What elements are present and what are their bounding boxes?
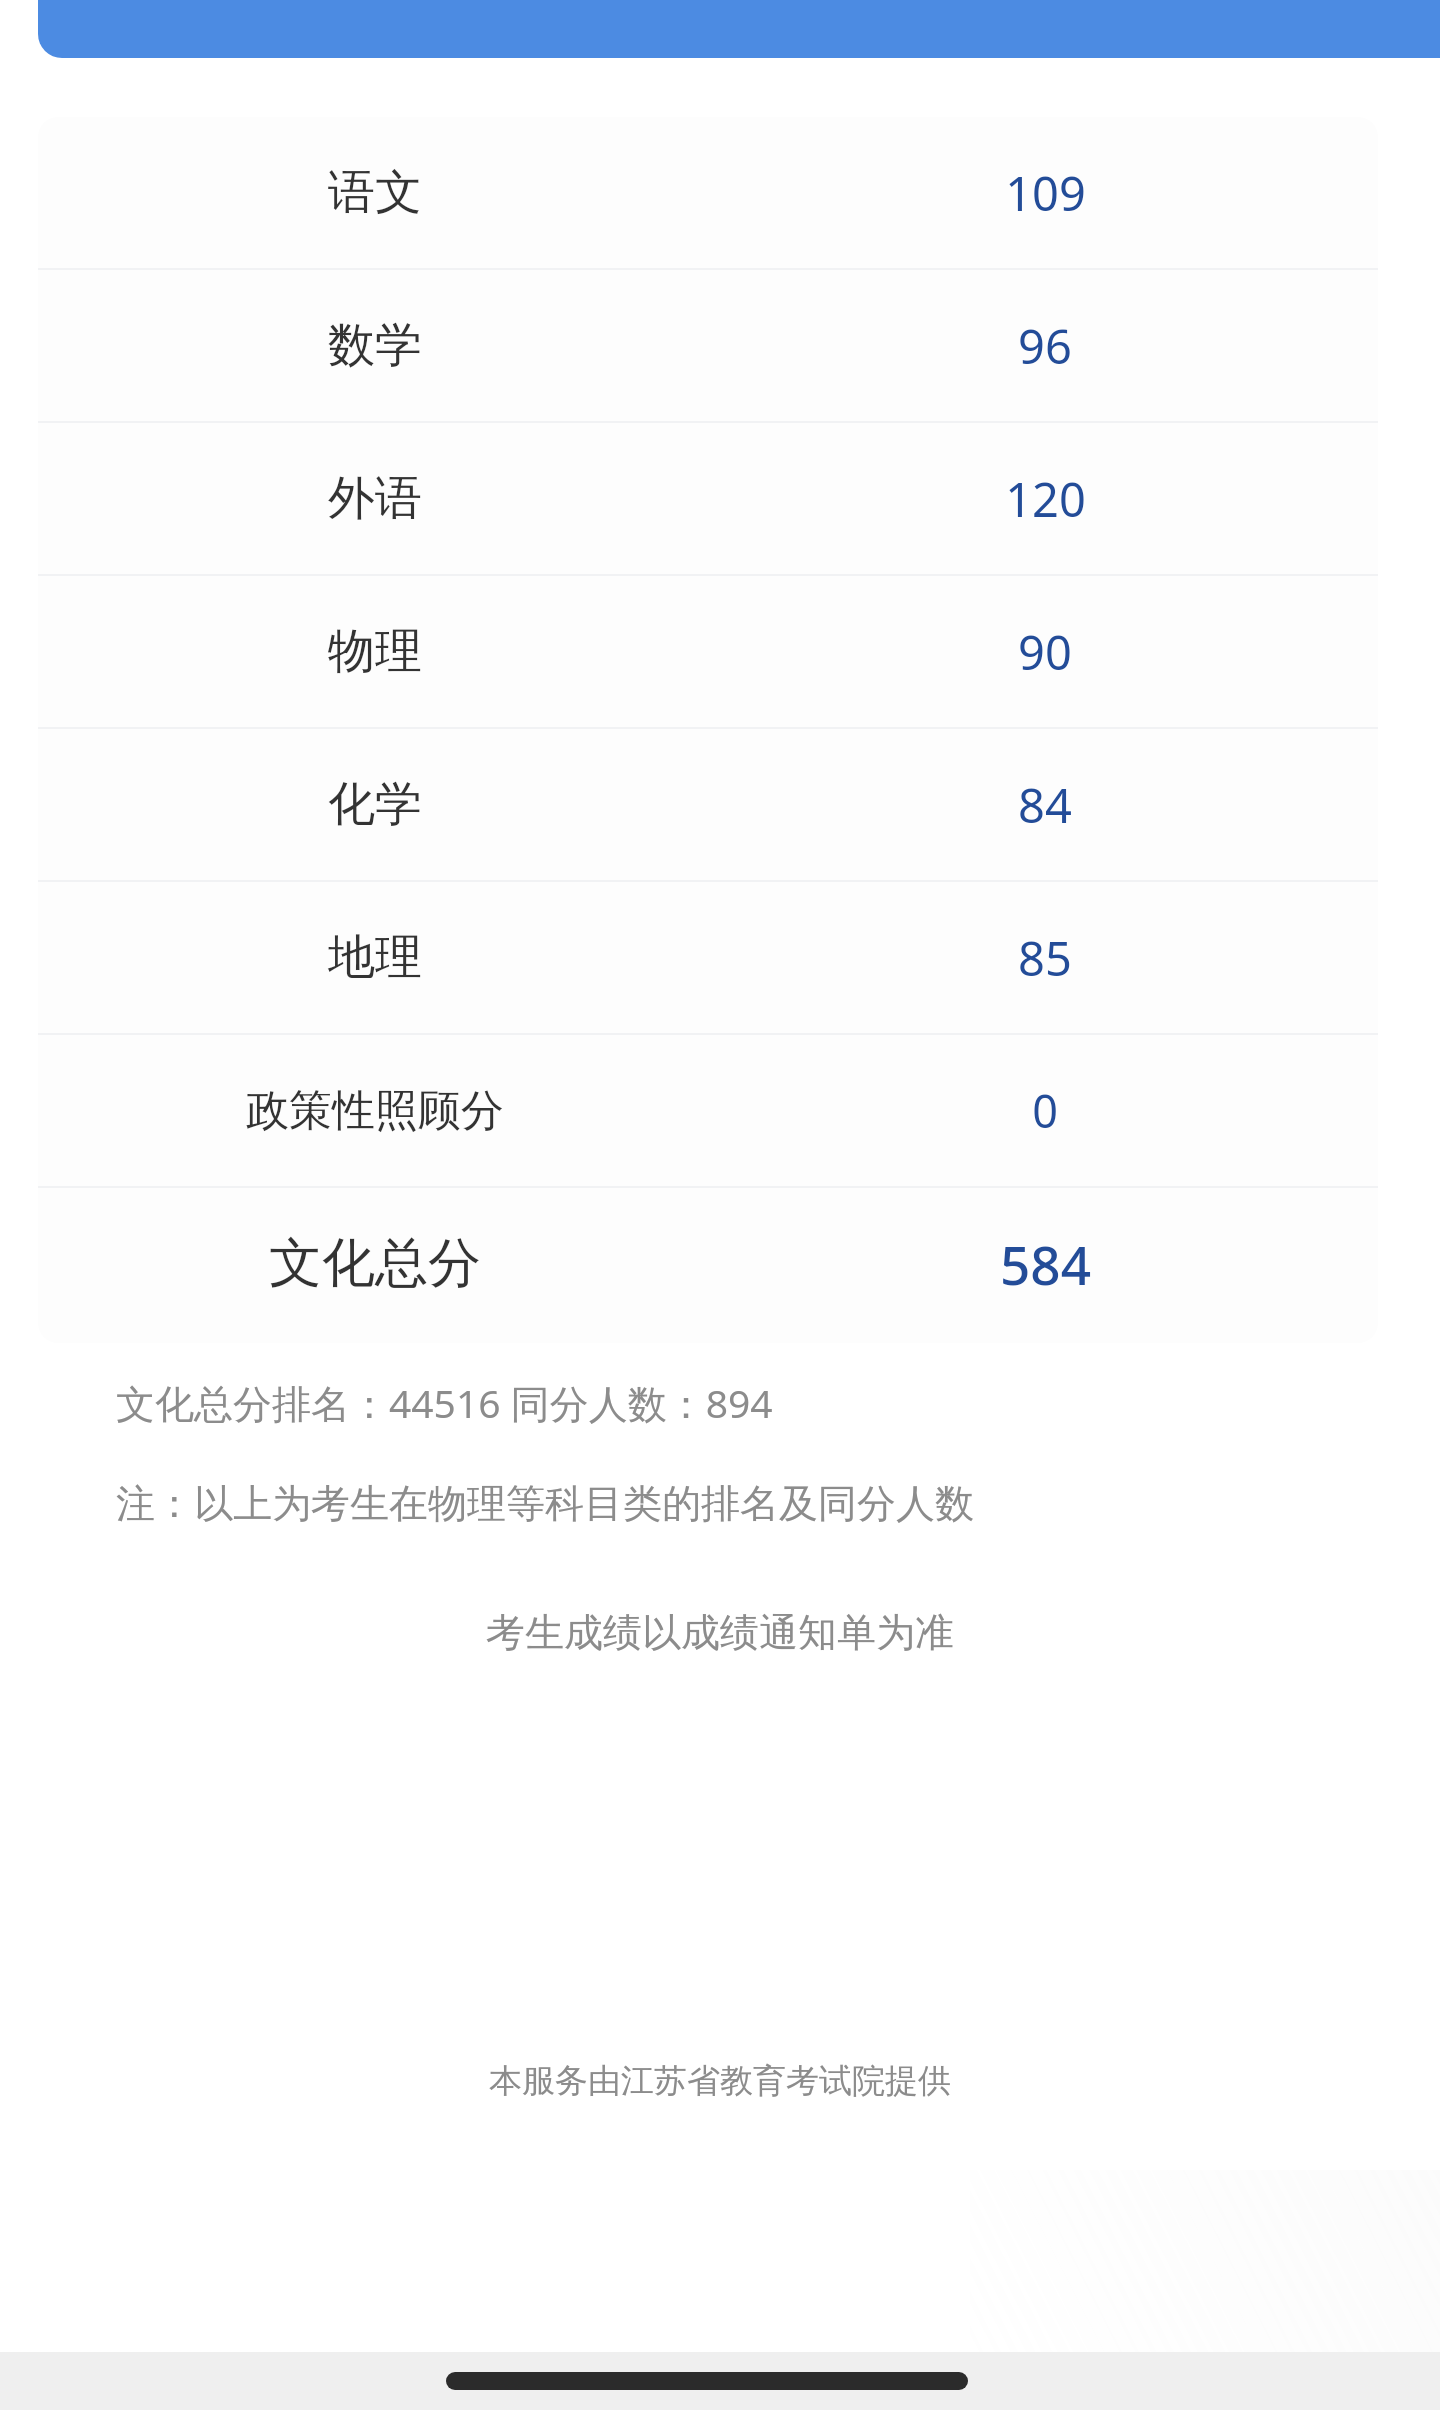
staticText: 文化总分 <box>269 1230 481 1297</box>
staticText: 120 <box>1005 467 1086 531</box>
button[interactable]: Home <box>446 2372 968 2390</box>
button[interactable]: 物理 <box>38 576 1378 727</box>
staticText: 数学 <box>328 316 422 375</box>
staticText: 109 <box>1005 161 1086 225</box>
staticText: 语文 <box>328 163 422 222</box>
staticText: 本服务由江苏省教育考试院提供 <box>489 2060 951 2102</box>
staticText: 90 <box>1018 620 1072 684</box>
staticText: 文化总分排名：44516 同分人数：894 <box>116 1376 773 1429</box>
button[interactable]: 语文 <box>38 117 1378 268</box>
button[interactable]: 文化总分 <box>38 1188 1378 1339</box>
staticText: 84 <box>1018 773 1072 837</box>
button[interactable]: 外语 <box>38 423 1378 574</box>
staticText: 85 <box>1018 926 1072 990</box>
staticText: 化学 <box>328 775 422 834</box>
staticText: 物理 <box>328 622 422 681</box>
button[interactable]: 化学 <box>38 729 1378 880</box>
button[interactable]: 数学 <box>38 270 1378 421</box>
button[interactable] <box>38 0 1440 58</box>
staticText: 注：以上为考生在物理等科目类的排名及同分人数 <box>116 1479 974 1528</box>
staticText: 考生成绩以成绩通知单为准 <box>486 1608 954 1657</box>
staticText: 外语 <box>328 469 422 528</box>
button[interactable]: 政策性照顾分 <box>38 1035 1378 1186</box>
staticText: 地理 <box>328 928 422 987</box>
staticText: 政策性照顾分 <box>246 1084 504 1138</box>
staticText: 584 <box>1000 1228 1091 1300</box>
button[interactable]: 地理 <box>38 882 1378 1033</box>
staticText: 0 <box>1032 1080 1058 1141</box>
staticText: 96 <box>1018 314 1072 378</box>
